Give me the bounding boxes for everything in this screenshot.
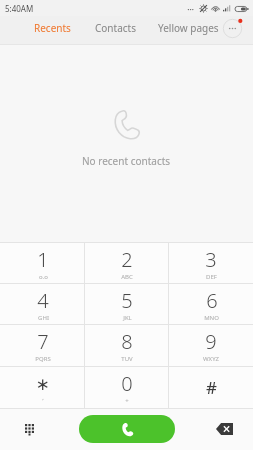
button[interactable]: 1 <box>0 243 85 283</box>
staticText: Contacts <box>95 21 136 35</box>
staticText: 6 <box>206 287 218 314</box>
button[interactable]: # <box>169 367 253 408</box>
button[interactable]: Recents <box>32 16 73 40</box>
staticText: 7 <box>37 328 49 355</box>
staticText: JKL <box>123 314 132 322</box>
staticText: 8 <box>121 328 133 355</box>
staticText: 3 <box>205 246 217 273</box>
staticText: 4 <box>37 287 49 314</box>
staticText: 1 <box>37 246 49 273</box>
button[interactable]: 8 <box>85 325 169 366</box>
button[interactable]: Backspace <box>209 414 239 444</box>
staticText: , <box>42 394 44 402</box>
button[interactable]: 0 <box>85 367 169 408</box>
button[interactable]: 9 <box>169 325 253 366</box>
staticText: Yellow pages <box>158 21 219 35</box>
staticText: No recent contacts <box>82 154 171 168</box>
staticText: 2 <box>121 246 133 273</box>
button[interactable]: Contacts <box>93 16 138 40</box>
button[interactable]: ∗ <box>0 367 85 408</box>
button[interactable]: 6 <box>169 284 253 324</box>
button[interactable]: Keypad <box>14 414 44 444</box>
staticText: # <box>206 376 217 399</box>
staticText: + <box>125 397 129 405</box>
button[interactable]: More options <box>221 17 244 40</box>
staticText: 5 <box>121 287 133 314</box>
staticText: ABC <box>121 273 133 281</box>
button[interactable]: Yellow pages <box>156 16 221 40</box>
button[interactable]: Call <box>79 415 175 443</box>
staticText: MNO <box>204 314 219 322</box>
staticText: Recents <box>34 21 71 35</box>
staticText: TUV <box>121 355 133 363</box>
staticText: PQRS <box>35 355 51 363</box>
staticText: 5:40AM <box>5 3 34 14</box>
staticText: WXYZ <box>203 355 219 363</box>
staticText: 9 <box>205 328 217 355</box>
staticText: o.o <box>39 273 48 281</box>
staticText: 0 <box>121 370 133 397</box>
button[interactable]: 4 <box>0 284 85 324</box>
staticText: DEF <box>206 273 217 281</box>
staticText: GHI <box>38 314 49 322</box>
button[interactable]: 2 <box>85 243 169 283</box>
staticText: ∗ <box>35 374 50 394</box>
button[interactable]: 3 <box>169 243 253 283</box>
button[interactable]: 7 <box>0 325 85 366</box>
button[interactable]: 5 <box>85 284 169 324</box>
